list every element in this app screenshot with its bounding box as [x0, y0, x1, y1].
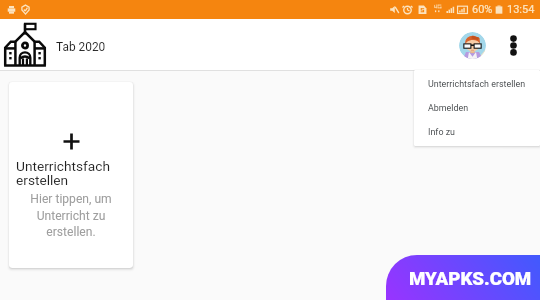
staticText: MYAPKS.COM — [409, 268, 532, 290]
button[interactable]: Abmelden — [414, 96, 540, 120]
staticText: Hier tippen, um Unterricht zu erstellen. — [16, 192, 126, 238]
button[interactable]: Account — [459, 32, 486, 59]
staticText: Unterrichtsfach erstellen — [428, 79, 526, 89]
staticText: 60% — [472, 3, 493, 16]
staticText: Abmelden — [428, 103, 469, 113]
button[interactable]: More options — [499, 31, 527, 59]
staticText: Info zu — [428, 127, 456, 137]
button[interactable]: Info zu — [414, 120, 540, 144]
button[interactable]: Unterrichtsfach erstellen — [9, 82, 133, 268]
staticText: 13:54 — [507, 3, 535, 16]
staticText: Tab 2020 — [56, 40, 106, 54]
staticText: Unterrichtsfach erstellen — [16, 158, 126, 188]
button[interactable]: Unterrichtsfach erstellen — [414, 72, 540, 96]
